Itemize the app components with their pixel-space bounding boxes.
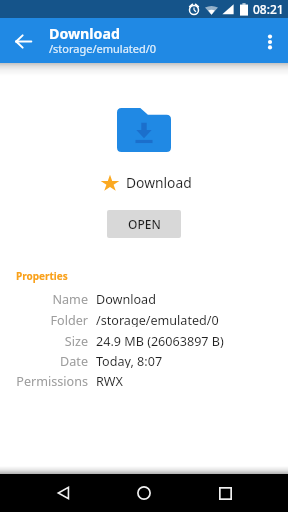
button[interactable]: Home	[126, 475, 162, 511]
button[interactable]: More options	[244, 19, 288, 63]
staticText: Date	[0, 353, 88, 368]
staticText: OPEN	[128, 216, 161, 232]
staticText: Download	[96, 291, 156, 306]
button[interactable]: Back	[0, 19, 44, 63]
staticText: Properties	[16, 269, 68, 283]
staticText: Size	[0, 333, 88, 348]
button[interactable]: OPEN	[107, 210, 181, 238]
staticText: Download	[49, 24, 120, 43]
staticText: /storage/emulated/0	[49, 41, 157, 56]
staticText: /storage/emulated/0	[96, 312, 219, 327]
staticText: Folder	[0, 312, 88, 327]
staticText: Name	[0, 291, 88, 306]
staticText: Today, 8:07	[96, 353, 163, 368]
staticText: Permissions	[0, 373, 88, 388]
staticText: 08:21	[253, 1, 284, 17]
button[interactable]: Back	[45, 475, 81, 511]
staticText: RWX	[96, 373, 123, 388]
button[interactable]: Recents	[207, 475, 243, 511]
staticText: Download	[126, 173, 192, 192]
staticText: 24.9 MB (26063897 B)	[96, 333, 224, 348]
